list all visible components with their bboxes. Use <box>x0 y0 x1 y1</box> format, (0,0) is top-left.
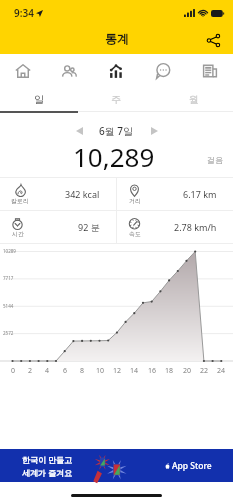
staticText: 시간 <box>12 230 24 238</box>
staticText: 일 <box>34 93 44 106</box>
staticText: 6월 7일 <box>99 124 134 138</box>
staticText: 걸음 <box>207 155 223 165</box>
staticText: 12 <box>113 366 122 376</box>
staticText: 2572 <box>3 330 14 336</box>
button[interactable]: 시간 <box>0 211 116 243</box>
staticText: 6 <box>63 366 68 376</box>
staticText: 한국이 만들고 <box>22 454 73 465</box>
button[interactable]: Previous day <box>70 123 88 139</box>
staticText: 속도 <box>129 230 141 238</box>
button[interactable]: 월 <box>155 87 233 111</box>
button[interactable]: 일 <box>0 87 77 111</box>
staticText: 2.78 km/h <box>174 221 217 233</box>
button[interactable]: 주 <box>77 87 155 111</box>
staticText: 7717 <box>3 275 14 281</box>
staticText: App Store <box>172 460 212 472</box>
staticText: 24 <box>217 366 226 376</box>
staticText: 14 <box>130 366 139 376</box>
button[interactable]: Statistics <box>92 54 139 87</box>
button[interactable]: Share <box>201 28 225 52</box>
staticText: 6.17 km <box>183 188 217 200</box>
staticText: 8 <box>80 366 85 376</box>
staticText: 22 <box>200 366 209 376</box>
staticText: 칼로리 <box>11 197 29 205</box>
staticText: 주 <box>111 93 121 106</box>
button[interactable]: 한국이 만들고 <box>0 449 233 482</box>
staticText: 통계 <box>105 31 129 46</box>
staticText: 92 분 <box>78 221 100 233</box>
button[interactable]: 속도 <box>117 211 233 243</box>
staticText: 월 <box>189 93 199 106</box>
staticText: 20 <box>183 366 192 376</box>
button[interactable]: Friends <box>46 54 92 87</box>
button[interactable]: 거리 <box>117 178 233 210</box>
staticText: 거리 <box>129 197 141 205</box>
staticText: 4 <box>45 366 50 376</box>
staticText: 2 <box>28 366 33 376</box>
staticText: 10,289 <box>73 139 155 174</box>
staticText: 5144 <box>3 303 14 309</box>
button[interactable]: Chat <box>139 54 186 87</box>
button[interactable]: 칼로리 <box>0 178 116 210</box>
button[interactable]: News <box>186 54 233 87</box>
staticText: 9:34 <box>14 6 34 20</box>
staticText: 세계가 즐겨요 <box>22 467 73 478</box>
staticText: 342 kcal <box>65 188 100 200</box>
staticText: 16 <box>148 366 157 376</box>
staticText: 10289 <box>3 248 16 254</box>
button[interactable]: Next day <box>145 123 163 139</box>
staticText: 10 <box>96 366 105 376</box>
staticText: 18 <box>165 366 174 376</box>
button[interactable]: Home <box>0 54 46 87</box>
staticText: 0 <box>11 366 16 376</box>
